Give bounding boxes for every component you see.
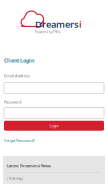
button[interactable]: Forgot Password?: [4, 138, 35, 143]
staticText: Login: [49, 123, 58, 128]
staticText: [ Yesterday ]: [7, 177, 23, 180]
staticText: Latest Dreamersi News: [7, 163, 51, 168]
staticText: Email Address: [4, 73, 30, 78]
staticText: Client Login: [4, 57, 34, 64]
staticText: Forgot Password?: [4, 138, 35, 143]
staticText: Powered by PSPro: [35, 30, 61, 34]
staticText: i: [79, 18, 82, 30]
staticText: Dreamers: [35, 18, 79, 30]
staticText: Password: [4, 99, 21, 105]
button[interactable]: Login: [4, 121, 104, 131]
